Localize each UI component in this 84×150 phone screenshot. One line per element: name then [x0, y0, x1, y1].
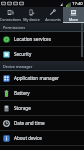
- staticText: Storage: [14, 105, 31, 111]
- button[interactable]: Location services: [0, 32, 84, 46]
- staticText: About device: [14, 135, 42, 141]
- button[interactable]: Date and time: [0, 116, 84, 130]
- staticText: Permissions: [3, 25, 25, 30]
- staticText: Accounts: [45, 17, 61, 22]
- button[interactable]: Accounts: [42, 7, 63, 23]
- button[interactable]: My device: [21, 7, 42, 23]
- staticText: Battery: [14, 90, 30, 96]
- staticText: Device manager: [3, 64, 33, 69]
- staticText: Location services: [14, 36, 51, 42]
- button[interactable]: Battery: [0, 86, 84, 100]
- staticText: Date and time: [14, 120, 45, 126]
- button[interactable]: About device: [0, 131, 84, 145]
- button[interactable]: Connections: [0, 7, 21, 23]
- staticText: 17:40: [72, 1, 83, 7]
- button[interactable]: Security: [0, 47, 84, 61]
- button[interactable]: More: [63, 7, 84, 23]
- staticText: Security: [14, 51, 32, 57]
- staticText: Application manager: [14, 75, 59, 81]
- staticText: Connections: [0, 17, 21, 22]
- staticText: My device: [23, 17, 40, 22]
- staticText: More: [69, 17, 78, 22]
- button[interactable]: Storage: [0, 101, 84, 115]
- button[interactable]: Application manager: [0, 71, 84, 85]
